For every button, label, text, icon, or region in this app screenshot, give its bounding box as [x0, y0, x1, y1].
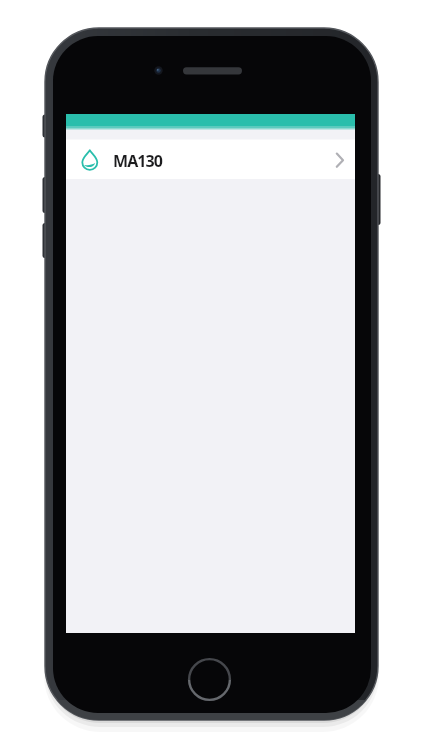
staticText: MA130	[113, 150, 163, 172]
